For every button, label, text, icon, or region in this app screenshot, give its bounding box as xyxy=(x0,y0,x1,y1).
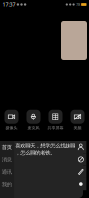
staticText: 共享屏幕 xyxy=(47,125,63,130)
button[interactable]: 首页 xyxy=(0,141,14,153)
button[interactable]: 麦克风 xyxy=(23,109,44,130)
staticText: 通讯 xyxy=(2,169,12,175)
button[interactable]: Mute xyxy=(75,153,86,166)
staticText: 消息 xyxy=(2,156,12,163)
button[interactable]: 消息 xyxy=(0,153,14,166)
staticText: 美颜 xyxy=(73,125,81,130)
button[interactable]: 我的 xyxy=(0,178,14,191)
staticText: 我的 xyxy=(2,181,12,188)
button[interactable]: Participants xyxy=(75,141,86,153)
button[interactable]: 美颜 xyxy=(67,109,88,130)
staticText: 78 xyxy=(76,2,80,7)
staticText: 麦克风 xyxy=(27,125,39,130)
staticText: ，怎么聊的老铁。 xyxy=(15,150,55,156)
button[interactable]: Edit xyxy=(75,166,86,178)
staticText: 喜欢聊天，想学怎么找妹聊 xyxy=(15,142,75,149)
staticText: 首页 xyxy=(2,144,12,150)
staticText: 摄像头 xyxy=(5,125,17,130)
button[interactable]: 共享屏幕 xyxy=(45,109,66,130)
button[interactable]: Record xyxy=(75,178,86,190)
button[interactable]: 通讯 xyxy=(0,166,14,178)
button[interactable]: 摄像头 xyxy=(1,109,22,130)
staticText: 17:37 xyxy=(2,1,15,8)
